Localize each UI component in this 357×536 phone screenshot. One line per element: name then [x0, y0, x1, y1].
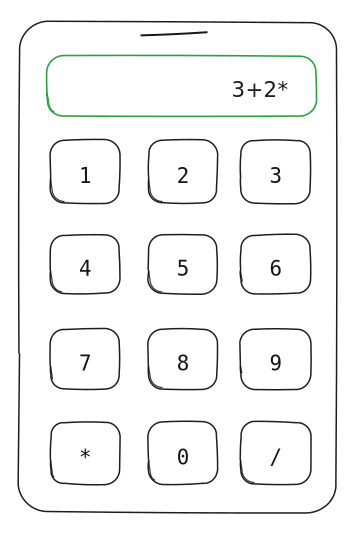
staticText: 4: [79, 256, 92, 280]
button[interactable]: *: [0, 0, 357, 536]
staticText: 1: [79, 164, 92, 188]
button[interactable]: 2: [0, 0, 357, 536]
staticText: 9: [269, 351, 282, 375]
button[interactable]: 6: [0, 0, 357, 536]
button[interactable]: 3: [0, 0, 357, 536]
staticText: 7: [79, 351, 92, 375]
button[interactable]: 1: [0, 0, 357, 536]
button[interactable]: 5: [0, 0, 357, 536]
staticText: 0: [177, 445, 190, 469]
staticText: 5: [177, 256, 190, 280]
button[interactable]: 8: [0, 0, 357, 536]
staticText: *: [79, 445, 92, 469]
staticText: 3: [269, 164, 282, 188]
staticText: 8: [177, 351, 190, 375]
staticText: 6: [269, 256, 282, 280]
staticText: 2: [177, 164, 190, 188]
button[interactable]: 4: [0, 0, 357, 536]
button[interactable]: 0: [0, 0, 357, 536]
staticText: 3+2*: [231, 77, 288, 102]
staticText: /: [269, 445, 282, 469]
button[interactable]: /: [0, 0, 357, 536]
button[interactable]: 7: [0, 0, 357, 536]
button[interactable]: 9: [0, 0, 357, 536]
